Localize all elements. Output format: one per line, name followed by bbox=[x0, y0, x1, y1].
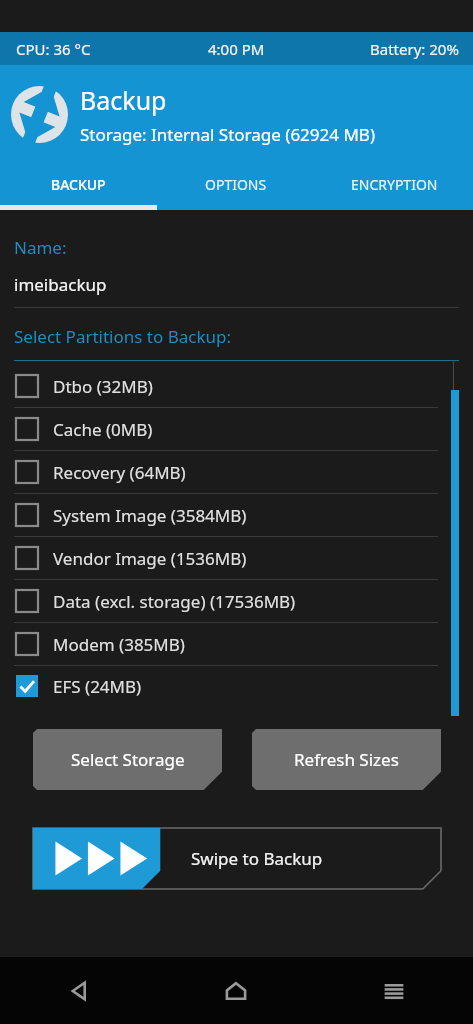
staticText: ENCRYPTION bbox=[351, 175, 438, 194]
button[interactable]: Cache (0MB) bbox=[0, 408, 473, 451]
staticText: Refresh Sizes bbox=[294, 748, 399, 771]
staticText: Modem (385MB) bbox=[53, 633, 185, 656]
staticText: Cache (0MB) bbox=[53, 418, 153, 441]
button[interactable]: OPTIONS bbox=[157, 163, 315, 205]
button[interactable]: System Image (3584MB) bbox=[0, 494, 473, 537]
button[interactable]: EFS (24MB) bbox=[0, 666, 473, 706]
staticText: Name: bbox=[14, 236, 67, 259]
staticText: Recovery (64MB) bbox=[53, 461, 186, 484]
staticText: Dtbo (32MB) bbox=[53, 375, 153, 398]
button[interactable]: Swipe to Backup bbox=[33, 828, 441, 889]
staticText: BACKUP bbox=[51, 175, 106, 194]
staticText: Storage: Internal Storage (62924 MB) bbox=[80, 123, 376, 146]
button[interactable]: Home bbox=[157, 957, 315, 1024]
button[interactable]: Modem (385MB) bbox=[0, 623, 473, 666]
button[interactable]: Dtbo (32MB) bbox=[0, 365, 473, 408]
staticText: EFS (24MB) bbox=[53, 675, 142, 698]
button[interactable]: Refresh Sizes bbox=[252, 729, 441, 790]
staticText: Select Partitions to Backup: bbox=[14, 325, 232, 348]
staticText: imeibackup bbox=[14, 273, 107, 296]
button[interactable]: Back bbox=[0, 957, 157, 1024]
button[interactable]: Vendor Image (1536MB) bbox=[0, 537, 473, 580]
button[interactable]: Select Storage bbox=[33, 729, 222, 790]
staticText: Select Storage bbox=[71, 748, 185, 771]
staticText: Battery: 20% bbox=[370, 39, 459, 59]
staticText: System Image (3584MB) bbox=[53, 504, 247, 527]
staticText: Backup bbox=[80, 83, 167, 117]
staticText: Data (excl. storage) (17536MB) bbox=[53, 590, 296, 613]
staticText: Vendor Image (1536MB) bbox=[53, 547, 247, 570]
staticText: CPU: 36 °C bbox=[16, 39, 91, 59]
button[interactable]: Recovery (64MB) bbox=[0, 451, 473, 494]
button[interactable]: Menu bbox=[315, 957, 473, 1024]
button[interactable]: Data (excl. storage) (17536MB) bbox=[0, 580, 473, 623]
button[interactable]: imeibackup bbox=[0, 273, 473, 308]
staticText: 4:00 PM bbox=[208, 39, 265, 59]
staticText: OPTIONS bbox=[205, 175, 267, 194]
button[interactable]: ENCRYPTION bbox=[315, 163, 473, 205]
button[interactable]: BACKUP bbox=[0, 163, 157, 205]
staticText: Swipe to Backup bbox=[191, 847, 323, 870]
